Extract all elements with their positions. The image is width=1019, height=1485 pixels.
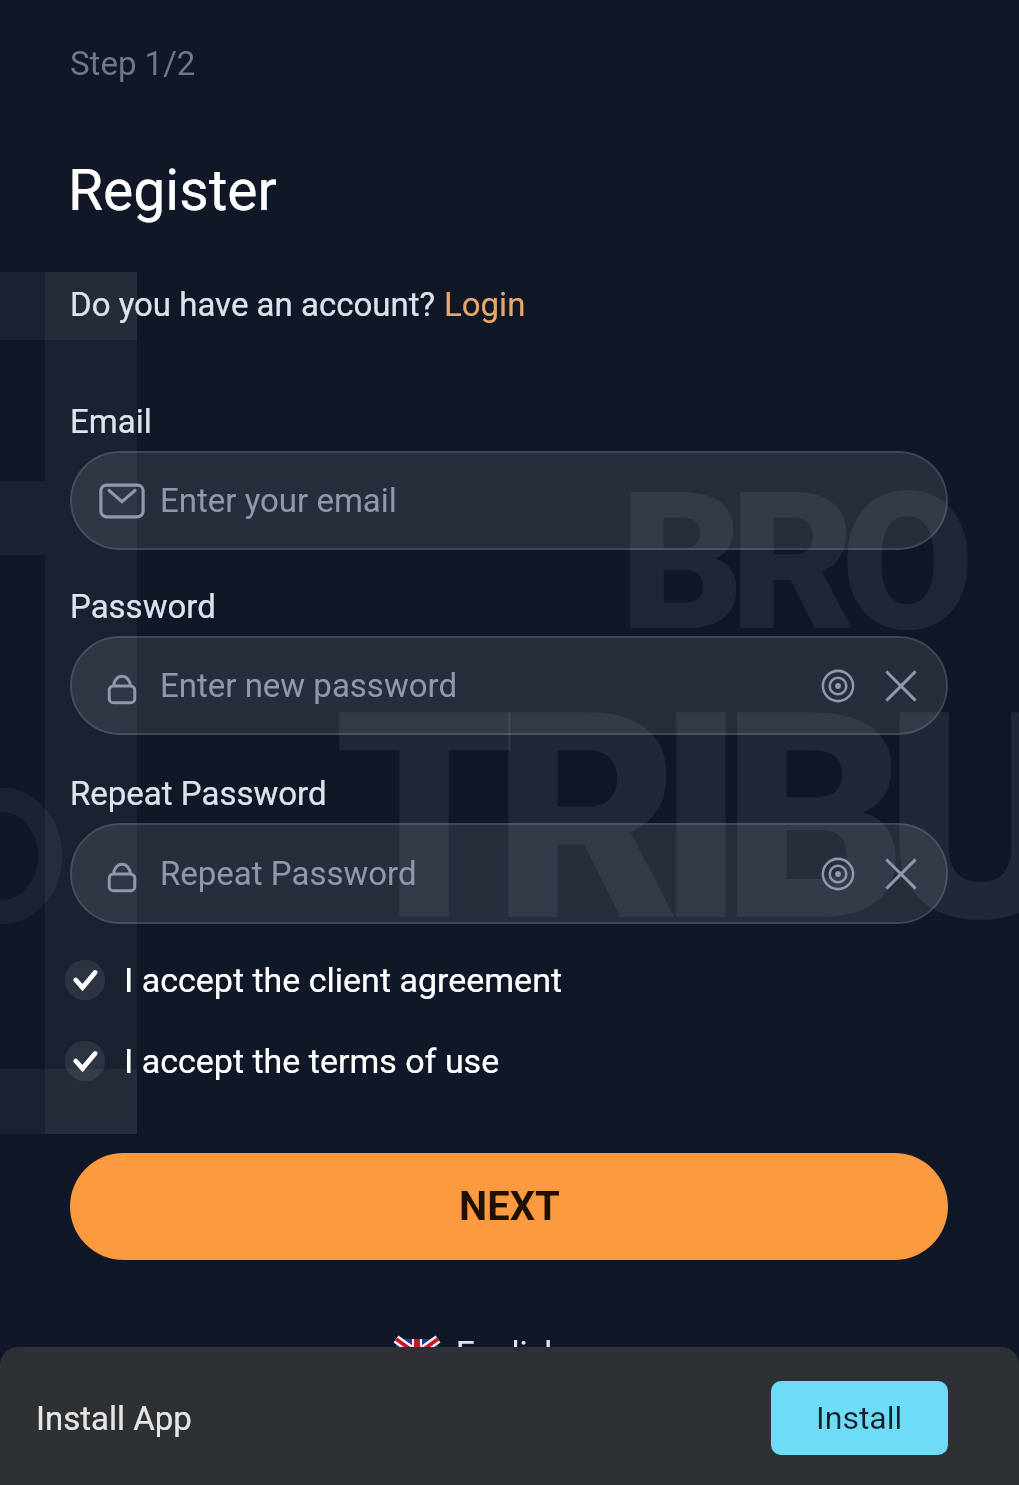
staticText: Enter your email bbox=[160, 481, 397, 520]
staticText: BRO bbox=[620, 450, 960, 675]
staticText: Do you have an account? bbox=[70, 285, 444, 324]
button[interactable]: Enter new password bbox=[70, 636, 948, 735]
staticText: NEXT bbox=[459, 1183, 560, 1230]
staticText: Install App bbox=[36, 1399, 192, 1438]
button[interactable]: NEXT bbox=[70, 1153, 948, 1260]
button[interactable]: Clear bbox=[884, 669, 918, 703]
staticText: Enter new password bbox=[160, 666, 457, 705]
staticText: Repeat Password bbox=[160, 854, 417, 893]
button[interactable]: I accept the client agreement bbox=[64, 959, 563, 1001]
staticText: I accept the client agreement bbox=[124, 960, 563, 1000]
staticText: Repeat Password bbox=[70, 774, 327, 813]
button[interactable]: Show password bbox=[820, 668, 856, 704]
button[interactable]: Login bbox=[444, 285, 526, 324]
button[interactable]: Repeat Password bbox=[70, 823, 948, 924]
button[interactable]: I accept the terms of use bbox=[64, 1040, 500, 1082]
staticText: TRIBU bbox=[334, 650, 1019, 988]
button[interactable]: English bbox=[396, 1334, 563, 1373]
staticText: I accept the terms of use bbox=[124, 1041, 500, 1081]
button[interactable]: Show password bbox=[820, 856, 856, 892]
button[interactable]: Install bbox=[771, 1381, 948, 1455]
staticText: Password bbox=[70, 587, 216, 626]
staticText: Register bbox=[68, 157, 277, 224]
button[interactable]: Enter your email bbox=[70, 451, 948, 550]
staticText: Email bbox=[70, 402, 152, 441]
staticText: Install bbox=[816, 1399, 903, 1437]
staticText: Step 1/2 bbox=[70, 44, 196, 83]
button[interactable]: Clear bbox=[884, 857, 918, 891]
staticText: English bbox=[456, 1334, 563, 1373]
